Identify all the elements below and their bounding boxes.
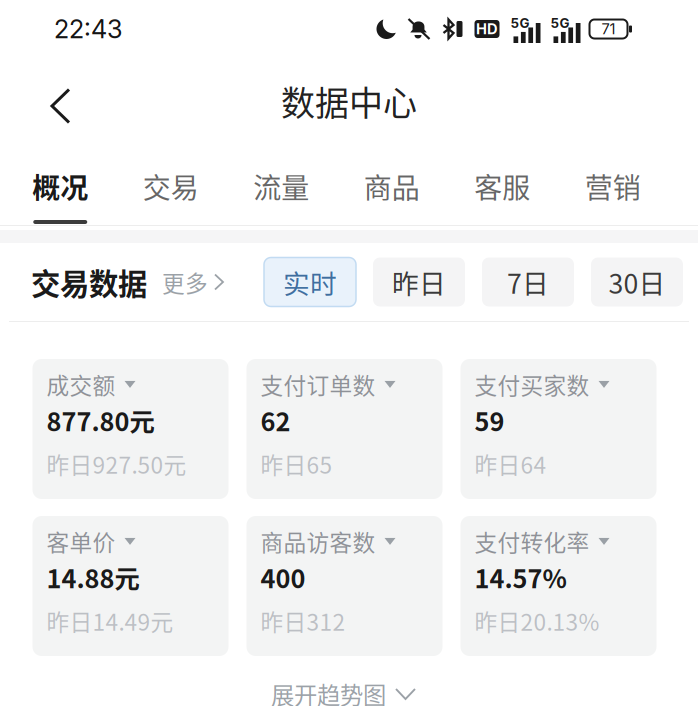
staticText: 400 xyxy=(260,559,305,595)
staticText: 昨日20.13% xyxy=(474,604,599,637)
button[interactable]: 展开趋势图 xyxy=(271,664,427,706)
staticText: 昨日65 xyxy=(260,447,332,480)
staticText: 14.57% xyxy=(474,559,566,595)
staticText: 5G xyxy=(550,15,569,31)
staticText: 数据中心 xyxy=(281,76,417,126)
staticText: 支付转化率 xyxy=(474,525,589,558)
button[interactable]: 成交额 xyxy=(32,359,228,499)
staticText: 展开趋势图 xyxy=(271,677,386,706)
staticText: 客服 xyxy=(474,166,530,206)
button[interactable]: 概况 xyxy=(5,142,115,225)
staticText: 昨日 xyxy=(392,263,446,301)
staticText: 营销 xyxy=(585,166,641,206)
button[interactable]: 流量 xyxy=(226,142,336,225)
staticText: 昨日312 xyxy=(260,604,345,637)
staticText: 实时 xyxy=(283,263,337,301)
button[interactable]: 客单价 xyxy=(32,516,228,656)
staticText: 30日 xyxy=(608,263,665,301)
staticText: 7日 xyxy=(507,263,549,301)
staticText: 更多 xyxy=(162,266,208,298)
button[interactable]: 更多 xyxy=(162,259,223,305)
staticText: 71 xyxy=(601,20,615,38)
staticText: 商品访客数 xyxy=(260,525,375,558)
staticText: 昨日927.50元 xyxy=(46,447,186,480)
staticText: 877.80元 xyxy=(46,402,154,438)
staticText: 支付订单数 xyxy=(260,368,375,401)
button[interactable]: 交易 xyxy=(115,142,226,225)
staticText: 商品 xyxy=(364,166,420,206)
button[interactable]: 商品 xyxy=(336,142,447,225)
button[interactable]: 营销 xyxy=(557,142,668,225)
button[interactable]: 支付转化率 xyxy=(460,516,656,656)
button[interactable]: 商品访客数 xyxy=(246,516,442,656)
staticText: 62 xyxy=(260,402,290,438)
staticText: 概况 xyxy=(32,166,88,206)
staticText: 14.88元 xyxy=(46,559,139,595)
staticText: 59 xyxy=(474,402,504,438)
staticText: HD xyxy=(476,20,498,38)
button[interactable]: 客服 xyxy=(447,142,557,225)
staticText: 交易数据 xyxy=(31,261,147,303)
staticText: 支付买家数 xyxy=(474,368,589,401)
staticText: 流量 xyxy=(253,166,309,206)
button[interactable]: 昨日 xyxy=(373,257,465,306)
button[interactable]: 30日 xyxy=(591,257,683,306)
staticText: 成交额 xyxy=(46,368,115,401)
staticText: 客单价 xyxy=(46,525,115,558)
button[interactable]: 支付买家数 xyxy=(460,359,656,499)
staticText: 昨日64 xyxy=(474,447,546,480)
button[interactable]: 实时 xyxy=(264,257,356,306)
staticText: 交易 xyxy=(143,166,199,206)
button[interactable]: 返回 xyxy=(0,59,93,138)
staticText: 5G xyxy=(510,15,529,31)
staticText: 昨日14.49元 xyxy=(46,604,173,637)
button[interactable]: 支付订单数 xyxy=(246,359,442,499)
button[interactable]: 7日 xyxy=(482,257,574,306)
staticText: 22:43 xyxy=(54,14,123,44)
